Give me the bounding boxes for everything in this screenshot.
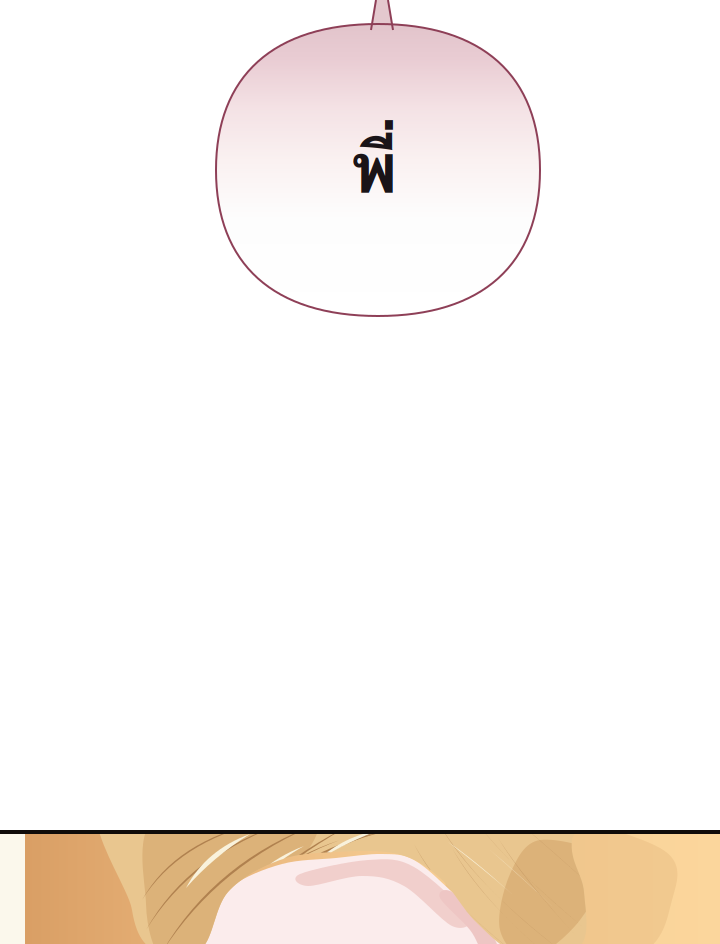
staticText: พี่ [351, 113, 398, 222]
